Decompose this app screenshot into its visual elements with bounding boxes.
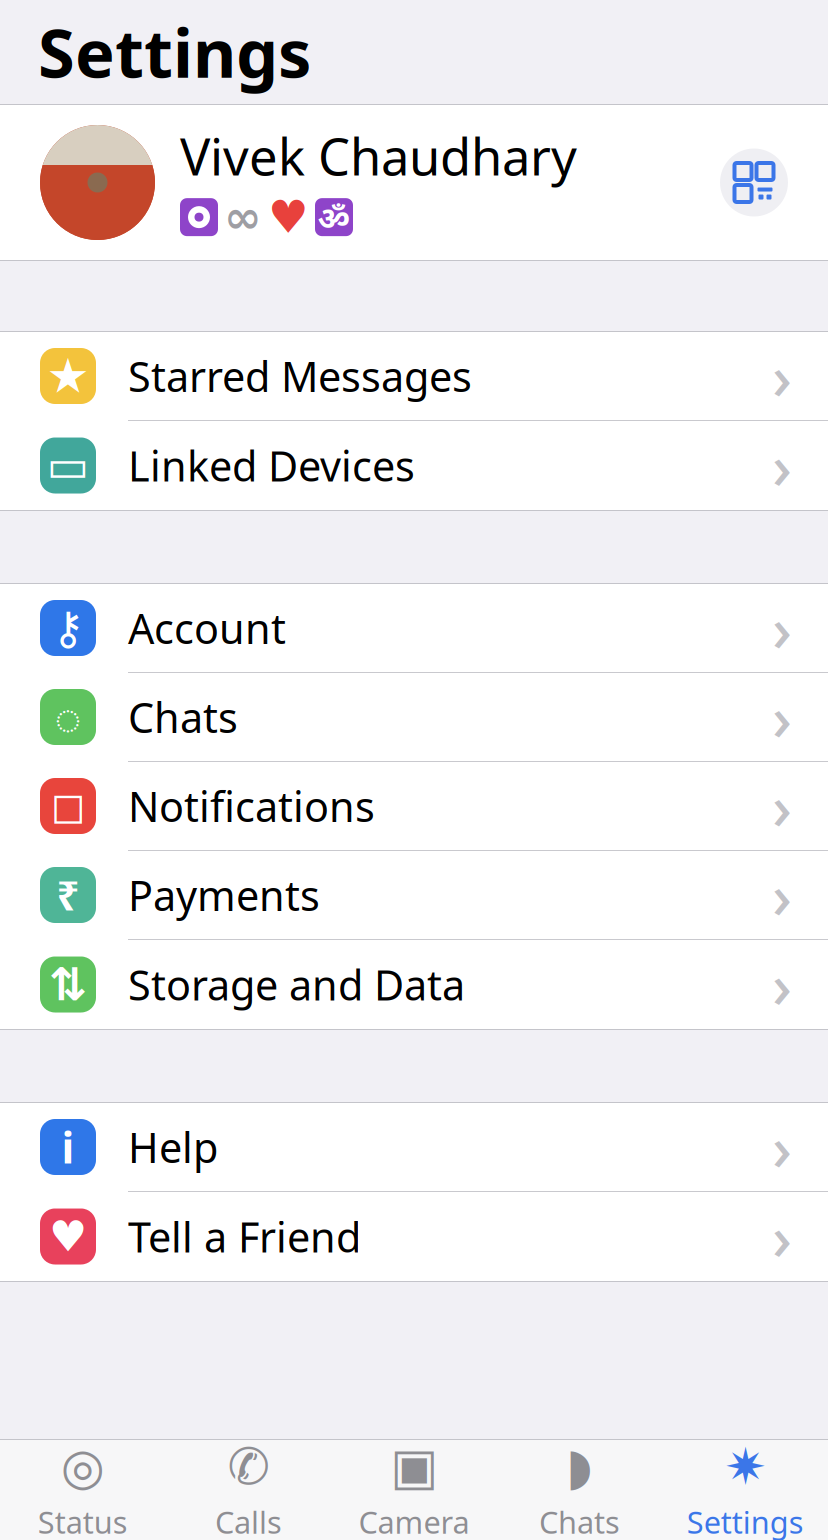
staticText: Vivek Chaudhary [180,122,577,189]
button[interactable]: ♥ [0,1192,828,1281]
button[interactable]: ✆ [166,1440,331,1540]
staticText: › [772,1106,792,1188]
staticText: Chats [539,1501,620,1540]
button[interactable]: ◻ [0,762,828,851]
button[interactable]: ▣ [331,1440,497,1540]
staticText: Help [128,1120,218,1174]
staticText: ॐ [317,196,350,238]
staticText: ⚷ [51,602,84,654]
staticText: Camera [358,1501,469,1540]
staticText: Chats [128,690,238,744]
staticText: ₹ [56,868,79,921]
staticText: Settings [687,1501,804,1540]
staticText: ⇅ [49,959,87,1010]
staticText: › [772,335,792,417]
button[interactable]: ▭ [0,421,828,510]
staticText: › [772,425,792,506]
button[interactable]: ⇅ [0,940,828,1029]
staticText: i [61,1119,74,1175]
staticText: ◎ [61,1438,105,1495]
staticText: ✆ [227,1438,269,1495]
staticText: Account [128,601,286,655]
staticText: › [772,765,792,847]
staticText: Starred Messages [128,349,472,403]
staticText: ★ [46,349,89,403]
button[interactable]: ₹ [0,851,828,940]
staticText: Settings [38,8,311,96]
staticText: › [772,944,792,1025]
staticText: ▣ [390,1438,438,1495]
staticText: › [772,854,792,936]
staticText: ◻ [50,782,85,830]
button[interactable]: ⚷ [0,584,828,673]
staticText: ♥ [49,1212,87,1261]
button[interactable]: Vivek Chaudhary [0,105,828,260]
button[interactable]: ★ [0,332,828,421]
staticText: ◌ [54,687,81,747]
staticText: › [772,587,792,669]
staticText: › [772,676,792,758]
button[interactable]: ◗ [497,1440,662,1540]
staticText: › [772,1196,792,1277]
staticText: ♥ [268,191,309,243]
staticText: Tell a Friend [128,1209,361,1264]
staticText: ◗ [566,1438,593,1495]
staticText: Storage and Data [128,957,465,1012]
button[interactable]: ◎ [0,1440,166,1540]
staticText: Linked Devices [128,438,415,493]
staticText: Notifications [128,779,375,833]
staticText: ▭ [46,440,89,491]
button[interactable]: i [0,1103,828,1192]
staticText: ∞ [224,191,262,243]
button[interactable]: ◌ [0,673,828,762]
staticText: Status [38,1501,128,1540]
staticText: Calls [215,1501,282,1540]
staticText: Payments [128,868,320,922]
button[interactable]: ✷ [662,1440,828,1540]
staticText: ✷ [724,1438,766,1495]
